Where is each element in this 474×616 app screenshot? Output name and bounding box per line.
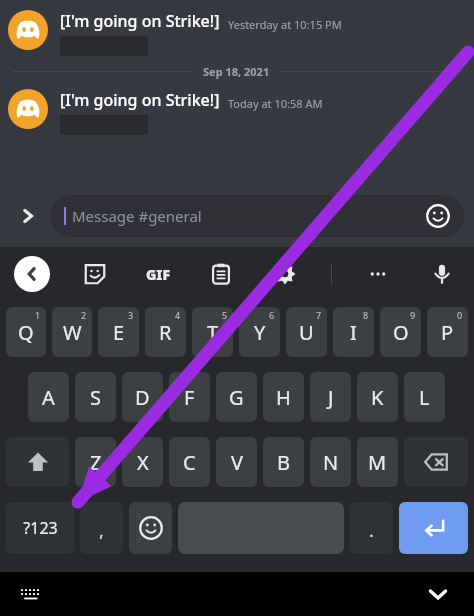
- staticText: S: [90, 384, 101, 411]
- button[interactable]: A: [28, 372, 69, 422]
- staticText: Sep 18, 2021: [203, 64, 270, 79]
- button[interactable]: R: [145, 307, 186, 357]
- staticText: D: [135, 384, 150, 411]
- staticText: 8: [363, 309, 369, 321]
- button[interactable]: Emoji: [426, 204, 450, 228]
- staticText: .: [369, 520, 374, 542]
- staticText: Q: [18, 319, 34, 346]
- staticText: P: [441, 319, 454, 346]
- button[interactable]: H: [263, 372, 304, 422]
- staticText: Message #general: [72, 206, 202, 226]
- button[interactable]: Z: [75, 437, 116, 487]
- staticText: W: [63, 319, 82, 346]
- button[interactable]: Q: [6, 307, 46, 357]
- button[interactable]: V: [216, 437, 257, 487]
- button[interactable]: L: [404, 372, 445, 422]
- staticText: B: [277, 449, 290, 476]
- button[interactable]: K: [357, 372, 398, 422]
- staticText: 5: [222, 309, 228, 321]
- button[interactable]: S: [75, 372, 116, 422]
- button[interactable]: More: [360, 256, 396, 292]
- staticText: J: [328, 384, 334, 411]
- button[interactable]: M: [357, 437, 398, 487]
- staticText: O: [393, 319, 409, 346]
- button[interactable]: .: [350, 502, 393, 554]
- staticText: 1: [35, 309, 41, 321]
- button[interactable]: X: [122, 437, 163, 487]
- staticText: 4: [175, 309, 181, 321]
- staticText: F: [184, 384, 195, 411]
- button[interactable]: B: [263, 437, 304, 487]
- staticText: Today at 10:58 AM: [228, 96, 323, 111]
- button[interactable]: T: [192, 307, 233, 357]
- staticText: N: [323, 449, 339, 476]
- button[interactable]: Attach: [10, 198, 46, 234]
- staticText: Y: [254, 319, 266, 346]
- staticText: 9: [410, 309, 416, 321]
- staticText: A: [42, 384, 55, 411]
- button[interactable]: N: [310, 437, 351, 487]
- staticText: U: [299, 319, 314, 346]
- button[interactable]: Hide keyboard: [14, 577, 48, 611]
- button[interactable]: U: [286, 307, 327, 357]
- staticText: 7: [316, 309, 322, 321]
- staticText: I: [350, 319, 357, 346]
- staticText: C: [183, 449, 196, 476]
- staticText: E: [113, 319, 125, 346]
- staticText: ,: [99, 520, 104, 542]
- button[interactable]: I: [333, 307, 374, 357]
- button[interactable]: Enter: [399, 502, 468, 554]
- staticText: 3: [128, 309, 134, 321]
- button[interactable]: E: [98, 307, 139, 357]
- button[interactable]: Close keyboard: [418, 574, 458, 614]
- button[interactable]: F: [169, 372, 210, 422]
- staticText: GIF: [146, 265, 171, 284]
- button[interactable]: Clipboard: [203, 256, 239, 292]
- button[interactable]: Backspace: [404, 437, 468, 487]
- button[interactable]: ,: [80, 502, 123, 554]
- staticText: K: [371, 384, 384, 411]
- staticText: [I'm going on Strike!]: [60, 10, 220, 32]
- staticText: X: [137, 449, 149, 476]
- button[interactable]: O: [380, 307, 421, 357]
- staticText: M: [368, 449, 387, 476]
- staticText: L: [419, 384, 430, 411]
- button[interactable]: C: [169, 437, 210, 487]
- button[interactable]: Voice: [424, 256, 460, 292]
- staticText: H: [276, 384, 291, 411]
- staticText: Z: [90, 449, 102, 476]
- staticText: [I'm going on Strike!]: [60, 89, 220, 111]
- button[interactable]: W: [52, 307, 92, 357]
- button[interactable]: Y: [239, 307, 280, 357]
- button[interactable]: GIF: [140, 256, 176, 292]
- button[interactable]: Settings: [267, 256, 303, 292]
- staticText: R: [159, 319, 172, 346]
- staticText: V: [231, 449, 243, 476]
- button[interactable]: Message #general: [50, 195, 464, 237]
- staticText: G: [229, 384, 244, 411]
- staticText: 0: [457, 309, 463, 321]
- staticText: Yesterday at 10:15 PM: [228, 17, 342, 32]
- staticText: T: [207, 319, 219, 346]
- button[interactable]: P: [427, 307, 468, 357]
- staticText: 2: [81, 309, 87, 321]
- staticText: 6: [269, 309, 275, 321]
- button[interactable]: Back: [14, 256, 50, 292]
- button[interactable]: Sticker: [77, 256, 113, 292]
- button[interactable]: J: [310, 372, 351, 422]
- button[interactable]: Shift: [6, 437, 69, 487]
- button[interactable]: ?123: [6, 502, 74, 554]
- button[interactable]: G: [216, 372, 257, 422]
- button[interactable]: D: [122, 372, 163, 422]
- staticText: ?123: [23, 517, 58, 539]
- button[interactable]: Emoji: [129, 502, 172, 554]
